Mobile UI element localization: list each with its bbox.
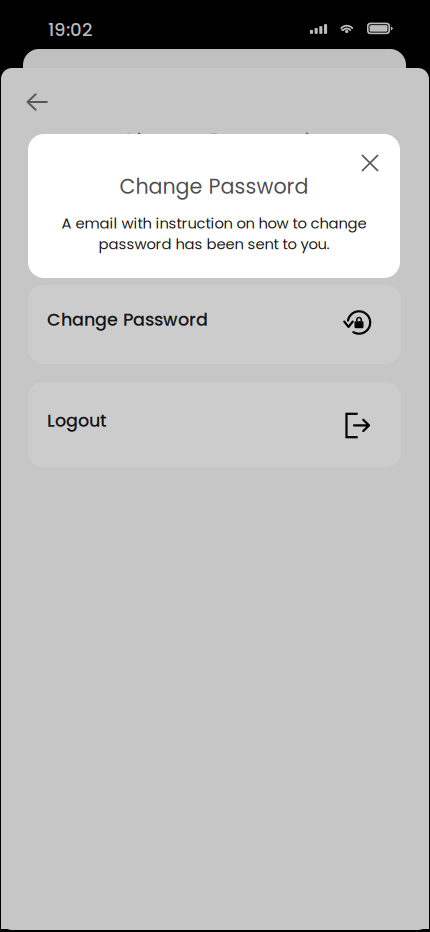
button[interactable]: Logout [28, 382, 401, 467]
staticText: Logout [47, 408, 107, 433]
staticText: password has been sent to you. [98, 234, 329, 254]
staticText: Change Password [120, 127, 309, 156]
button[interactable]: Change Password [28, 285, 401, 364]
staticText: Change Password [119, 172, 308, 201]
button[interactable]: Back [15, 80, 59, 124]
staticText: A email with instruction on how to chang… [61, 213, 366, 234]
button[interactable]: Close [352, 145, 388, 181]
staticText: Change Password [47, 307, 208, 332]
staticText: 19:02 [48, 17, 92, 42]
